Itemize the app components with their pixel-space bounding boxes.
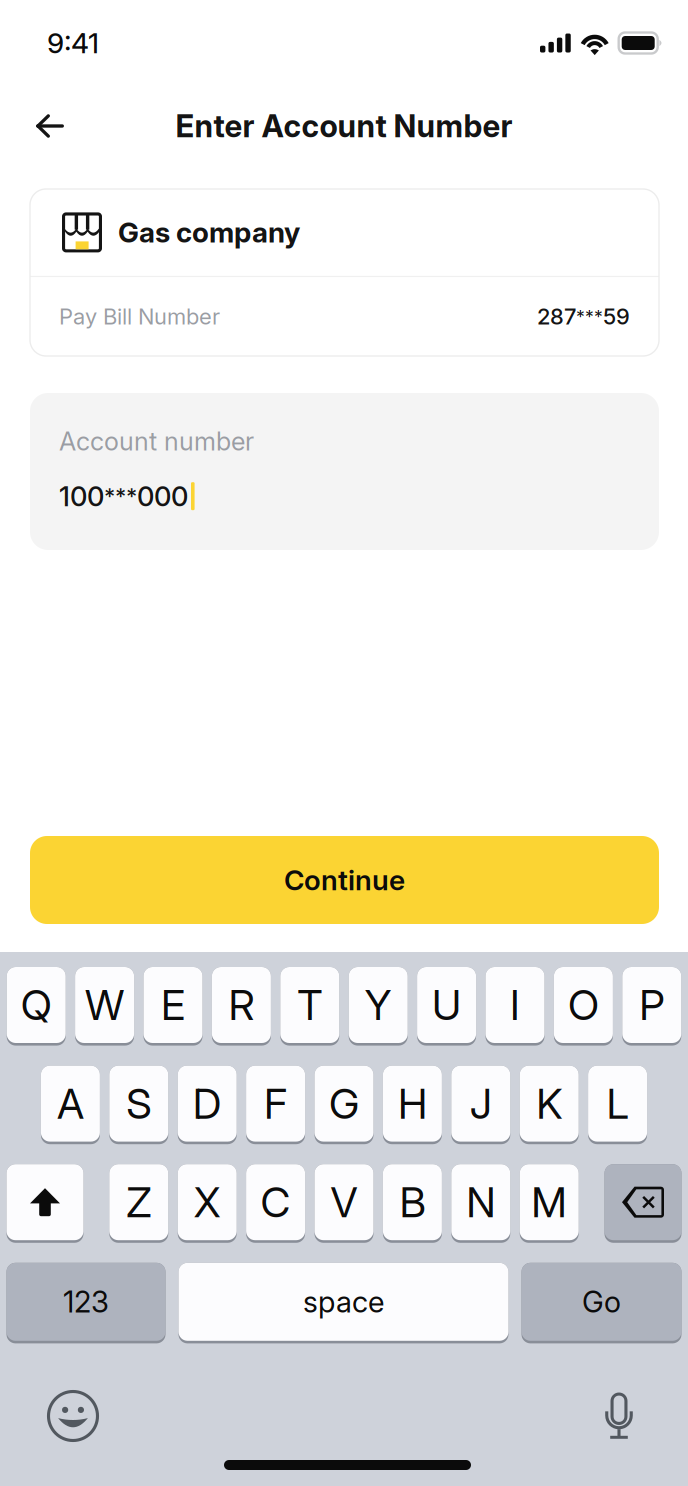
staticText: W (85, 980, 124, 1030)
staticText: F (264, 1079, 287, 1129)
button[interactable]: Shift (6, 1164, 83, 1243)
button[interactable]: I (485, 967, 544, 1046)
staticText: 100 (59, 480, 104, 513)
staticText: N (466, 1177, 495, 1227)
staticText: A (57, 1079, 84, 1129)
staticText: space (303, 1284, 384, 1320)
button[interactable]: H (383, 1066, 442, 1144)
staticText: Q (21, 980, 52, 1030)
button[interactable]: Account number (30, 393, 659, 550)
staticText: 287 (537, 303, 576, 330)
staticText: Gas company (118, 215, 300, 249)
button[interactable]: J (451, 1066, 510, 1144)
button[interactable]: E (143, 967, 202, 1046)
staticText: S (126, 1079, 151, 1129)
staticText: G (329, 1079, 359, 1129)
staticText: E (161, 980, 185, 1030)
staticText: R (228, 980, 254, 1030)
button[interactable]: A (41, 1066, 100, 1144)
button[interactable]: Q (7, 967, 66, 1046)
staticText: C (261, 1177, 291, 1227)
staticText: 000 (137, 480, 188, 513)
button[interactable]: 123 (6, 1263, 165, 1343)
button[interactable]: W (75, 967, 134, 1046)
button[interactable]: U (417, 967, 476, 1046)
button[interactable]: Back (19, 96, 81, 156)
staticText: O (568, 980, 599, 1030)
button[interactable]: F (246, 1066, 305, 1144)
button[interactable]: G (314, 1066, 373, 1144)
button[interactable]: C (246, 1164, 305, 1243)
button[interactable]: K (520, 1066, 579, 1144)
button[interactable]: Z (109, 1164, 168, 1243)
staticText: Account number (59, 426, 254, 457)
staticText: H (398, 1079, 427, 1129)
button[interactable]: M (520, 1164, 579, 1243)
button[interactable]: X (178, 1164, 237, 1243)
staticText: U (432, 980, 461, 1030)
staticText: Continue (284, 863, 405, 897)
staticText: Go (582, 1284, 621, 1320)
staticText: K (536, 1079, 562, 1129)
button[interactable]: Continue (30, 836, 659, 924)
staticText: P (639, 980, 664, 1030)
staticText: 123 (63, 1284, 109, 1320)
staticText: L (607, 1079, 629, 1129)
button[interactable]: L (588, 1066, 647, 1144)
button[interactable]: D (178, 1066, 237, 1144)
staticText: B (399, 1177, 425, 1227)
staticText: Z (126, 1177, 151, 1227)
button[interactable]: T (280, 967, 339, 1046)
button[interactable]: R (212, 967, 271, 1046)
button[interactable]: Go (521, 1263, 681, 1343)
staticText: X (194, 1177, 221, 1227)
button[interactable]: Delete (604, 1164, 681, 1243)
staticText: V (330, 1177, 357, 1227)
staticText: T (297, 980, 322, 1030)
staticText: Y (365, 980, 392, 1030)
staticText: J (470, 1079, 492, 1129)
staticText: 59 (603, 303, 630, 330)
button[interactable]: Y (349, 967, 408, 1046)
button[interactable]: O (554, 967, 613, 1046)
button[interactable]: V (314, 1164, 373, 1243)
button[interactable]: Dictation (584, 1385, 654, 1447)
staticText: *** (104, 483, 137, 509)
button[interactable]: space (178, 1263, 508, 1343)
button[interactable]: N (451, 1164, 510, 1243)
staticText: *** (576, 306, 603, 327)
button[interactable]: P (622, 967, 681, 1046)
button[interactable]: B (383, 1164, 442, 1243)
staticText: I (510, 980, 520, 1030)
staticText: Pay Bill Number (59, 303, 220, 330)
staticText: Enter Account Number (175, 107, 512, 144)
button[interactable]: Emoji (38, 1385, 108, 1447)
staticText: M (531, 1177, 567, 1227)
staticText: 9:41 (47, 26, 99, 60)
staticText: D (193, 1079, 222, 1129)
button[interactable]: S (109, 1066, 168, 1144)
